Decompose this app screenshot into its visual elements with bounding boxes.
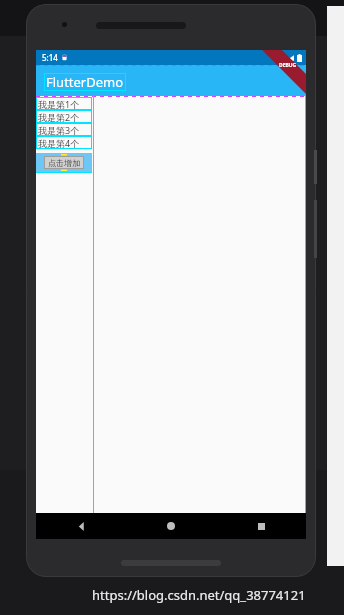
- staticText: 我是第3个: [38, 124, 80, 136]
- staticText: 5:14: [42, 52, 58, 63]
- button[interactable]: 我是第4个: [36, 136, 92, 149]
- button[interactable]: Back: [36, 513, 126, 539]
- button[interactable]: Home: [126, 513, 216, 539]
- staticText: 点击增加: [48, 158, 80, 168]
- button[interactable]: 我是第1个: [36, 97, 92, 110]
- button[interactable]: 我是第3个: [36, 123, 92, 136]
- button[interactable]: 点击增加: [36, 153, 92, 172]
- staticText: 我是第4个: [38, 137, 80, 149]
- other: Debug banner: [36, 50, 306, 110]
- staticText: DEBUG: [279, 62, 297, 69]
- button[interactable]: Recents: [216, 513, 306, 539]
- staticText: 我是第1个: [38, 98, 80, 110]
- button[interactable]: 我是第2个: [36, 110, 92, 123]
- staticText: https://blog.csdn.net/qq_38774121: [92, 586, 306, 604]
- staticText: FlutterDemo: [46, 73, 124, 91]
- button[interactable]: FlutterDemo: [46, 73, 124, 91]
- staticText: 我是第2个: [38, 111, 80, 123]
